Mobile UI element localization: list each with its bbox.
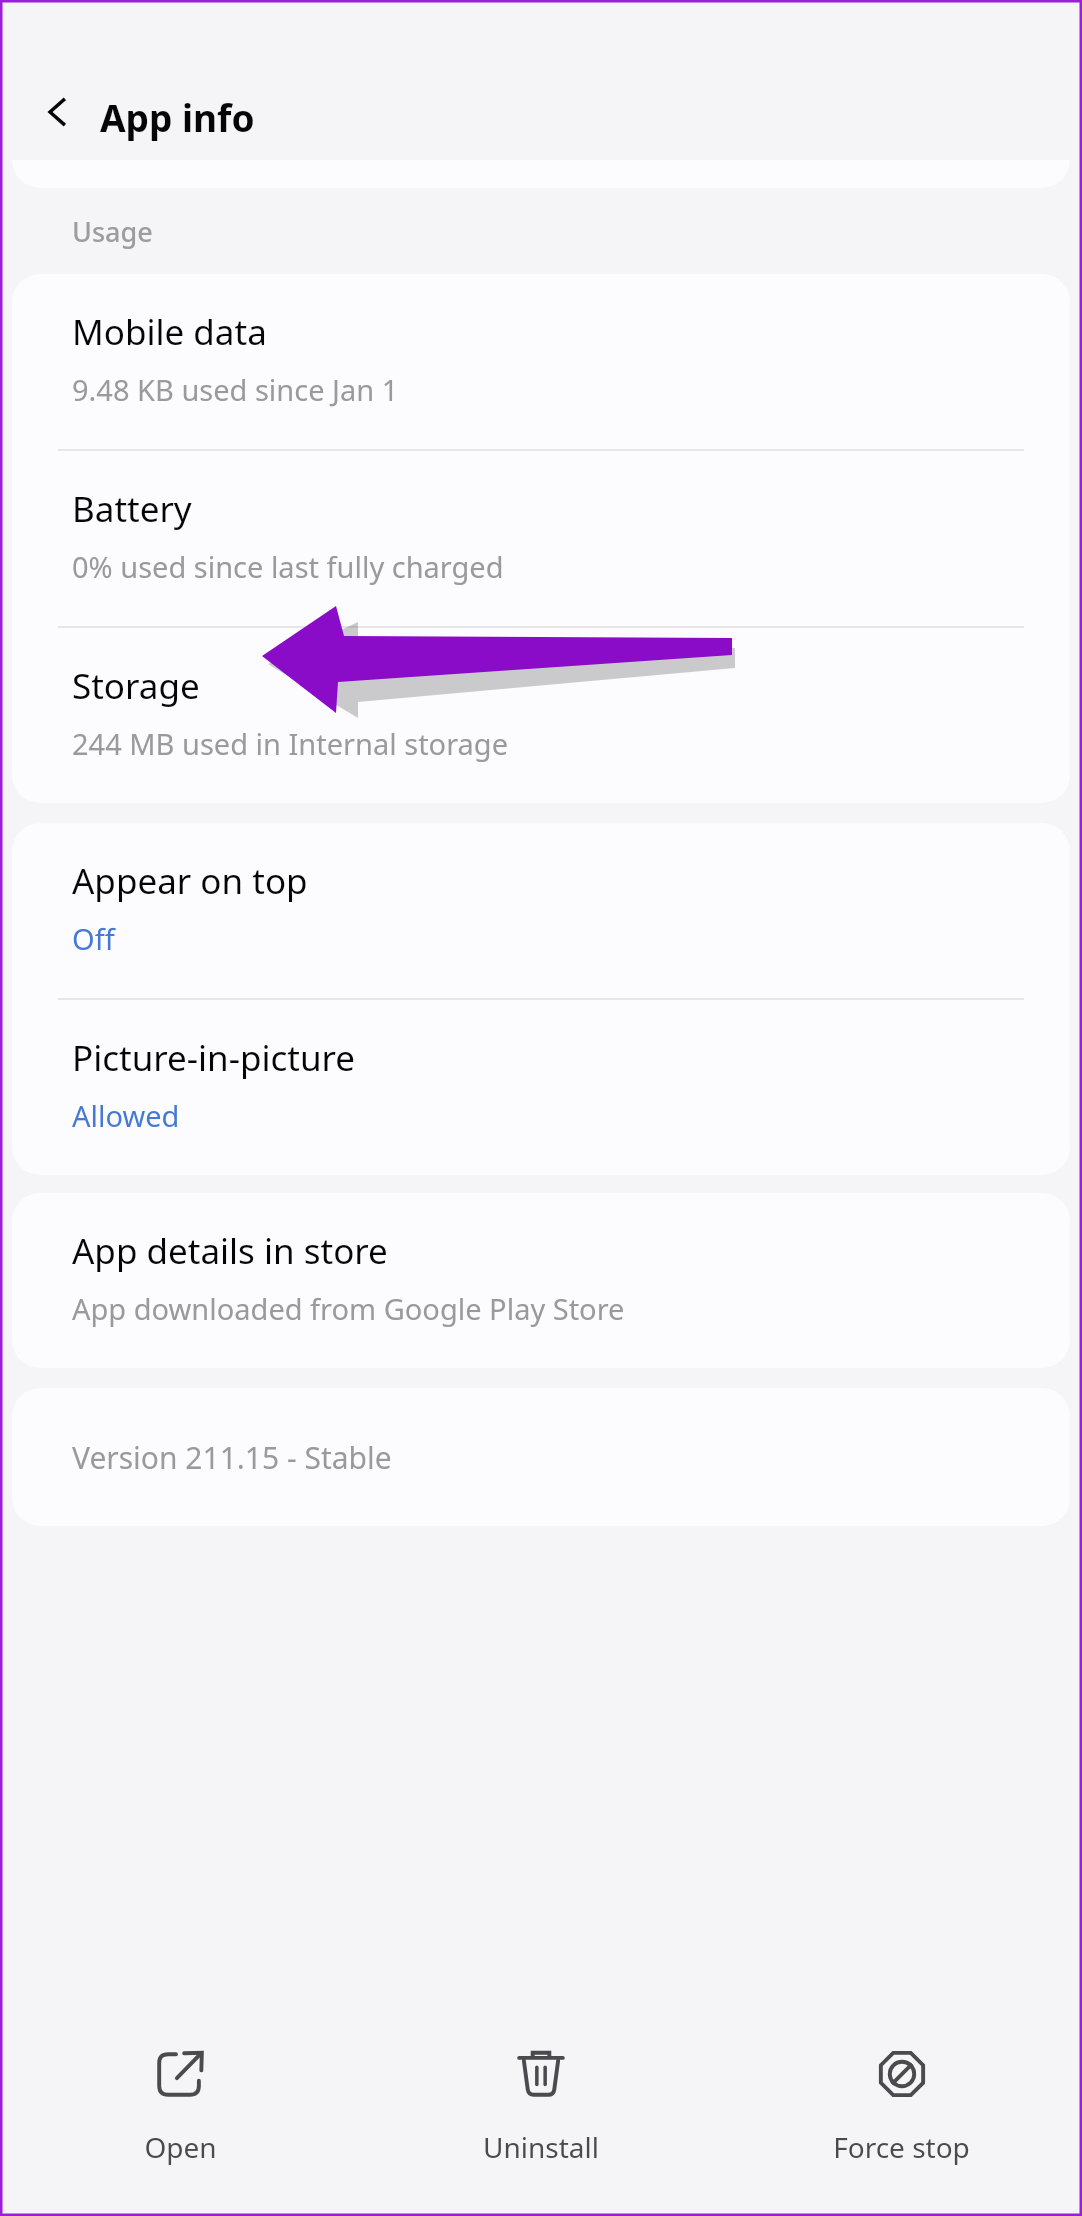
staticText: 0% used since last fully charged	[72, 547, 504, 586]
other: Force stop	[876, 2048, 928, 2100]
button[interactable]: Version 211.15 - Stable	[12, 1388, 1070, 1526]
staticText: App downloaded from Google Play Store	[72, 1289, 625, 1328]
staticText: Uninstall	[483, 2128, 599, 2166]
staticText: Version 211.15 - Stable	[72, 1437, 392, 1478]
staticText: App info	[100, 92, 255, 142]
button[interactable]: Picture-in-picture	[12, 1000, 1070, 1175]
staticText: Usage	[72, 213, 153, 250]
staticText: Picture-in-picture	[72, 1034, 356, 1082]
staticText: 9.48 KB used since Jan 1	[72, 370, 399, 409]
staticText: Mobile data	[72, 308, 267, 356]
button[interactable]: Mobile data	[12, 274, 1070, 449]
button[interactable]: Battery	[12, 451, 1070, 626]
staticText: Storage	[72, 662, 200, 710]
button[interactable]: Back	[26, 80, 90, 144]
staticText: 244 MB used in Internal storage	[72, 724, 509, 763]
button[interactable]: Appear on top	[12, 823, 1070, 998]
button[interactable]: Storage	[12, 628, 1070, 803]
staticText: Appear on top	[72, 857, 308, 905]
button[interactable]: Uninstall	[360, 1996, 721, 2216]
staticText: App details in store	[72, 1227, 388, 1275]
other: Uninstall	[515, 2048, 567, 2100]
staticText: Allowed	[72, 1096, 180, 1135]
button[interactable]: App details in store	[12, 1193, 1070, 1368]
staticText: Battery	[72, 485, 192, 533]
staticText: Force stop	[833, 2128, 970, 2166]
button[interactable]: Open	[0, 1996, 360, 2216]
other: Open	[154, 2048, 206, 2100]
staticText: Off	[72, 919, 115, 958]
staticText: Open	[144, 2128, 217, 2166]
button[interactable]: Force stop	[721, 1996, 1082, 2216]
